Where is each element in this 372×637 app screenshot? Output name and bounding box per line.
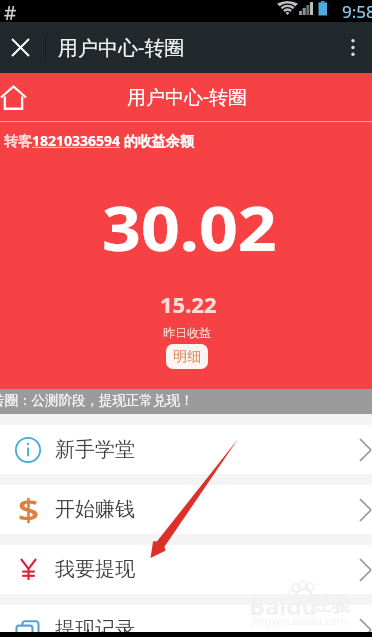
button[interactable]: More options: [334, 22, 372, 73]
staticText: 我要提现: [55, 557, 135, 582]
staticText: 15.22: [160, 291, 217, 319]
button[interactable]: $: [0, 485, 372, 534]
button[interactable]: 我要提现: [0, 545, 372, 594]
button[interactable]: 提现记录: [0, 605, 372, 637]
staticText: 转圈：公测阶段，提现正常兑现！: [0, 392, 194, 409]
staticText: jingyan.baidu.com: [252, 613, 348, 628]
staticText: $: [18, 489, 40, 530]
staticText: 明细: [173, 348, 201, 366]
button[interactable]: Home: [0, 80, 28, 114]
staticText: 昨日收益: [163, 325, 211, 340]
staticText: 开始赚钱: [55, 497, 135, 522]
staticText: Baidu: [249, 589, 318, 622]
staticText: 用户中心-转圈: [58, 34, 185, 61]
staticText: 用户中心-转圈: [127, 84, 248, 110]
staticText: 转客18210336594 的收益余额: [4, 131, 194, 150]
staticText: 新手学堂: [55, 437, 135, 462]
staticText: 9:58: [342, 0, 372, 22]
button[interactable]: 明细: [166, 344, 208, 369]
staticText: #: [4, 0, 17, 22]
staticText: 提现记录: [55, 617, 135, 637]
staticText: 30.02: [102, 186, 277, 268]
button[interactable]: Close: [0, 22, 40, 73]
staticText: 经验: [311, 592, 351, 617]
button[interactable]: 新手学堂: [0, 425, 372, 474]
